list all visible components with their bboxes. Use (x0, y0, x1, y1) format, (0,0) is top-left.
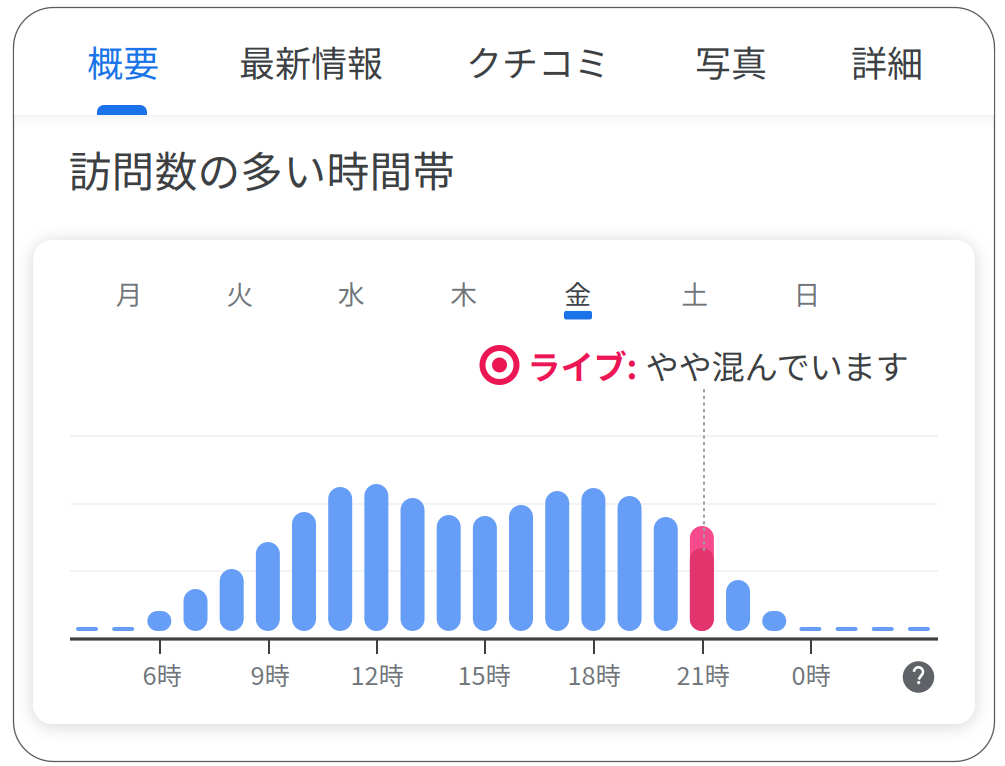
staticText: 6時 (142, 656, 181, 692)
staticText: ライブ: (527, 341, 637, 389)
button[interactable]: 詳細 (851, 11, 923, 111)
staticText: 訪問数の多い時間帯 (68, 138, 455, 200)
staticText: 15時 (457, 656, 510, 692)
staticText: 9時 (250, 656, 289, 692)
staticText: 12時 (350, 656, 403, 692)
staticText: 金 (564, 274, 591, 312)
button[interactable]: 概要 (87, 11, 159, 111)
staticText: やや混んでいます (645, 341, 908, 389)
staticText: 日 (793, 274, 820, 312)
button[interactable]: 金 (530, 252, 626, 334)
staticText: 最新情報 (239, 35, 383, 87)
button[interactable]: Help (896, 655, 940, 699)
staticText: 概要 (87, 35, 159, 87)
staticText: 木 (450, 274, 477, 312)
button[interactable]: 写真 (695, 11, 767, 111)
staticText: 土 (681, 274, 708, 312)
button[interactable]: 日 (759, 252, 855, 334)
staticText: 写真 (695, 35, 767, 87)
staticText: クチコミ (466, 35, 610, 87)
staticText: 18時 (567, 656, 620, 692)
button[interactable]: 土 (647, 252, 743, 334)
button[interactable]: 木 (416, 252, 512, 334)
staticText: 詳細 (851, 35, 923, 87)
staticText: 21時 (676, 656, 729, 692)
staticText: 0時 (791, 656, 830, 692)
button[interactable]: 水 (303, 252, 399, 334)
staticText: 月 (115, 274, 142, 312)
button[interactable]: 最新情報 (239, 11, 383, 111)
staticText: 水 (337, 274, 364, 312)
button[interactable]: 火 (192, 252, 288, 334)
button[interactable]: 月 (81, 252, 177, 334)
staticText: 火 (226, 274, 253, 312)
button[interactable]: クチコミ (466, 11, 610, 111)
